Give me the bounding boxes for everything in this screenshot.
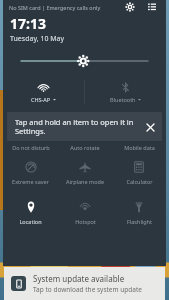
button[interactable]: Settings (121, 0, 139, 14)
button[interactable]: Flashlight (112, 193, 166, 233)
staticText: 17:13 (10, 14, 46, 33)
staticText: Tap to download the system update (33, 285, 142, 294)
staticText: Do not disturb (12, 144, 50, 151)
staticText: Hotspot (75, 218, 96, 225)
staticText: Airplane mode (66, 178, 104, 185)
button[interactable]: Calculator (112, 153, 166, 193)
button[interactable]: Location (3, 193, 58, 233)
button[interactable]: Bluetooth (85, 77, 166, 107)
button[interactable]: Edit quick settings (143, 0, 161, 14)
button[interactable]: Do not disturb (3, 141, 58, 153)
button[interactable]: Auto rotate (58, 141, 112, 153)
staticText: Bluetooth (110, 96, 136, 103)
button[interactable]: Brightness (3, 50, 166, 72)
button[interactable]: System update available (4, 267, 165, 300)
button[interactable]: Dismiss (142, 119, 158, 135)
staticText: Mobile data (124, 144, 155, 151)
button[interactable]: CHS-AP (3, 77, 84, 107)
staticText: Flashlight (127, 218, 152, 225)
button[interactable]: Airplane mode (58, 153, 112, 193)
staticText: CHS-AP (31, 96, 51, 103)
staticText: Tuesday, 10 May (10, 34, 65, 44)
staticText: Tap and hold an item to open it in Setti… (15, 117, 142, 136)
button[interactable]: Extreme saver (3, 153, 58, 193)
staticText: Auto rotate (70, 144, 100, 151)
button[interactable]: Mobile data (112, 141, 166, 153)
staticText: System update available (33, 273, 125, 284)
staticText: Location (19, 218, 42, 225)
button[interactable]: Hotspot (58, 193, 112, 233)
staticText: Calculator (126, 178, 153, 185)
staticText: No SIM card | Emergency calls only (9, 4, 101, 11)
button[interactable]: Tap and hold an item to open it in Setti… (7, 112, 162, 141)
staticText: Extreme saver (12, 178, 49, 185)
